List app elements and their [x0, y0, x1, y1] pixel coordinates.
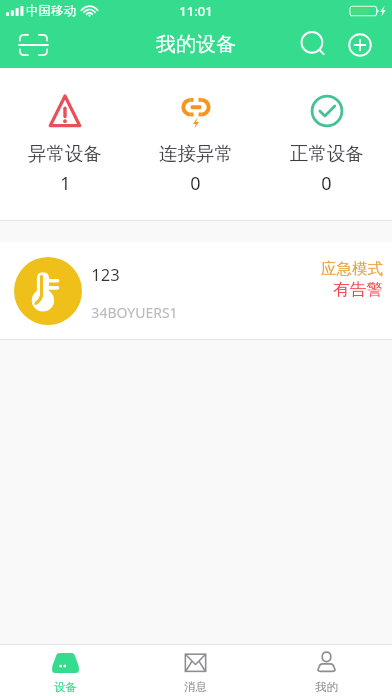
staticText: 正常设备 [290, 142, 364, 165]
staticText: 我的设备 [156, 32, 236, 57]
button[interactable]: 消息 [130, 645, 261, 696]
button[interactable]: Scan QR code [8, 22, 58, 68]
button[interactable]: 连接异常 [130, 68, 261, 220]
staticText: 123 [91, 263, 120, 285]
button[interactable]: 我的 [261, 645, 392, 696]
button[interactable]: 123 [0, 242, 392, 339]
staticText: 设备 [54, 680, 77, 694]
staticText: 11:01 [179, 2, 213, 20]
button[interactable]: Search [289, 22, 338, 68]
staticText: 连接异常 [159, 142, 233, 165]
staticText: 应急模式 [321, 259, 383, 279]
staticText: 有告警 [333, 279, 383, 300]
button[interactable]: 异常设备 [0, 68, 130, 220]
staticText: 我的 [315, 680, 338, 694]
button[interactable]: 设备 [0, 645, 130, 696]
staticText: 0 [190, 171, 201, 196]
button[interactable]: Add device [338, 22, 382, 68]
staticText: 消息 [184, 680, 207, 694]
staticText: 中国移动 [26, 3, 76, 19]
staticText: 1 [60, 171, 71, 196]
staticText: 异常设备 [28, 142, 102, 165]
staticText: 0 [321, 171, 332, 196]
button[interactable]: 正常设备 [261, 68, 392, 220]
staticText: 34BOYUERS1 [91, 303, 178, 322]
